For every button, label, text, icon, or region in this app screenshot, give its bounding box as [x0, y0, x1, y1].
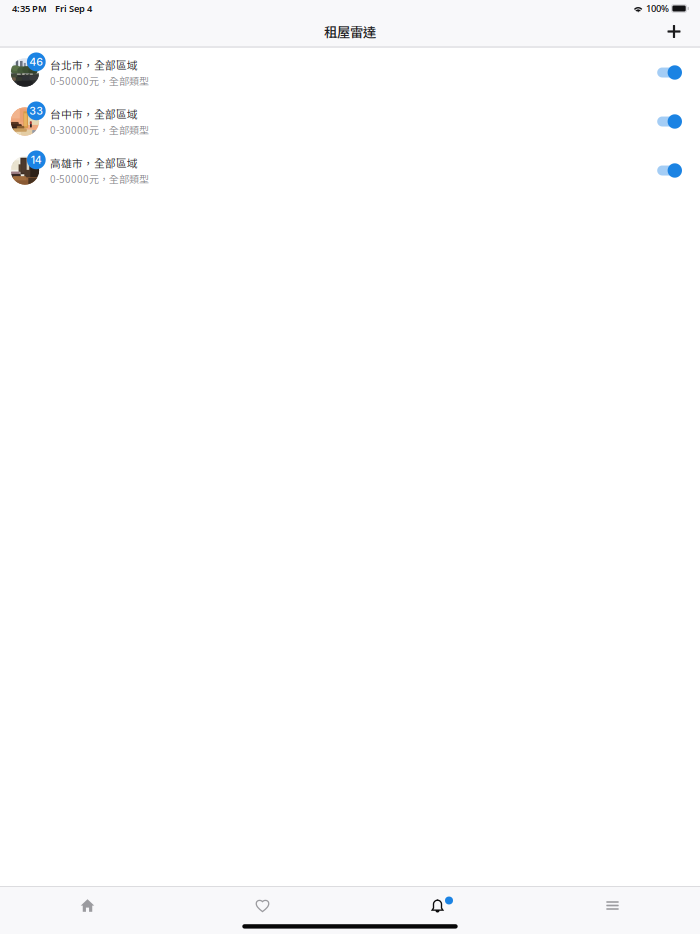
- staticText: 台北市，全部區域: [50, 57, 138, 72]
- staticText: Fri Sep 4: [55, 2, 92, 15]
- staticText: 4:35 PM: [12, 2, 47, 15]
- button[interactable]: Home: [0, 887, 175, 924]
- staticText: 46: [29, 55, 43, 68]
- staticText: 100%: [646, 2, 669, 15]
- staticText: 0-50000元，全部類型: [50, 171, 149, 186]
- staticText: 高雄市，全部區域: [50, 155, 138, 170]
- button[interactable]: 33: [0, 97, 700, 146]
- button[interactable]: Notifications: [350, 887, 525, 924]
- staticText: 14: [31, 153, 42, 166]
- button[interactable]: 46: [0, 48, 700, 97]
- staticText: 租屋雷達: [324, 22, 376, 41]
- button[interactable]: Favorites: [175, 887, 350, 924]
- button[interactable]: Menu: [525, 887, 700, 924]
- button[interactable]: 14: [0, 146, 700, 195]
- staticText: 台中市，全部區域: [50, 106, 138, 121]
- staticText: 33: [29, 104, 43, 117]
- staticText: 0-50000元，全部類型: [50, 73, 149, 88]
- button[interactable]: Add: [655, 17, 693, 45]
- staticText: 0-30000元，全部類型: [50, 122, 149, 137]
